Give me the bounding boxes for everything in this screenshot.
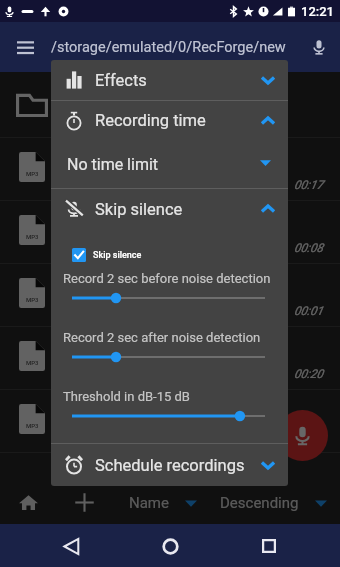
button[interactable]: ..: [0, 72, 340, 137]
staticText: MP3: [26, 359, 39, 366]
button[interactable]: MP3: [0, 138, 340, 200]
button[interactable]: Add: [66, 484, 102, 520]
staticText: 12:21: [301, 4, 335, 19]
button[interactable]: MP3: [0, 201, 340, 263]
staticText: 00:20: [294, 367, 324, 381]
button[interactable]: MP3: [0, 264, 340, 326]
button[interactable]: Skip silence: [51, 189, 288, 229]
staticText: Schedule recordings: [95, 456, 245, 475]
staticText: Skip silence: [93, 250, 142, 261]
button[interactable]: Schedule recordings: [51, 444, 288, 486]
staticText: 00:05: [294, 430, 324, 444]
staticText: Skip silence: [95, 200, 183, 219]
button[interactable]: Effects: [51, 60, 288, 100]
staticText: 00:08: [294, 241, 324, 255]
button[interactable]: Record: [277, 410, 328, 461]
button[interactable]: Home: [150, 526, 190, 566]
button[interactable]: Descending: [220, 488, 327, 518]
staticText: No time limit: [67, 155, 159, 174]
button[interactable]: No time limit: [51, 140, 288, 188]
staticText: /storage/emulated/0/RecForge/new: [51, 39, 286, 56]
button[interactable]: [51, 410, 288, 422]
staticText: MP3: [26, 170, 39, 177]
button[interactable]: MP3: [0, 390, 340, 452]
staticText: 00:01: [294, 304, 324, 318]
staticText: Threshold in dB-15 dB: [63, 389, 190, 404]
button[interactable]: [51, 351, 288, 363]
staticText: ..: [62, 95, 71, 114]
button[interactable]: [51, 292, 288, 304]
button[interactable]: Back: [51, 526, 91, 566]
button[interactable]: Recents: [249, 526, 289, 566]
staticText: 00:17: [294, 178, 324, 192]
staticText: Effects: [95, 71, 147, 90]
staticText: Recording time: [95, 111, 206, 130]
staticText: Name: [129, 494, 169, 512]
staticText: Record 2 sec before noise detection: [63, 271, 271, 286]
staticText: MP3: [26, 296, 39, 303]
button[interactable]: Microphone: [303, 31, 335, 63]
button[interactable]: Recording time: [51, 101, 288, 140]
staticText: Descending: [220, 494, 299, 512]
staticText: Record 2 sec after noise detection: [63, 330, 261, 345]
staticText: MP3: [26, 233, 39, 240]
button[interactable]: MP3: [0, 327, 340, 389]
button[interactable]: Name: [129, 488, 197, 518]
button[interactable]: Home: [10, 484, 46, 520]
button[interactable]: Skip silence: [51, 248, 288, 262]
staticText: MP3: [26, 422, 39, 429]
button[interactable]: Menu: [9, 31, 41, 63]
